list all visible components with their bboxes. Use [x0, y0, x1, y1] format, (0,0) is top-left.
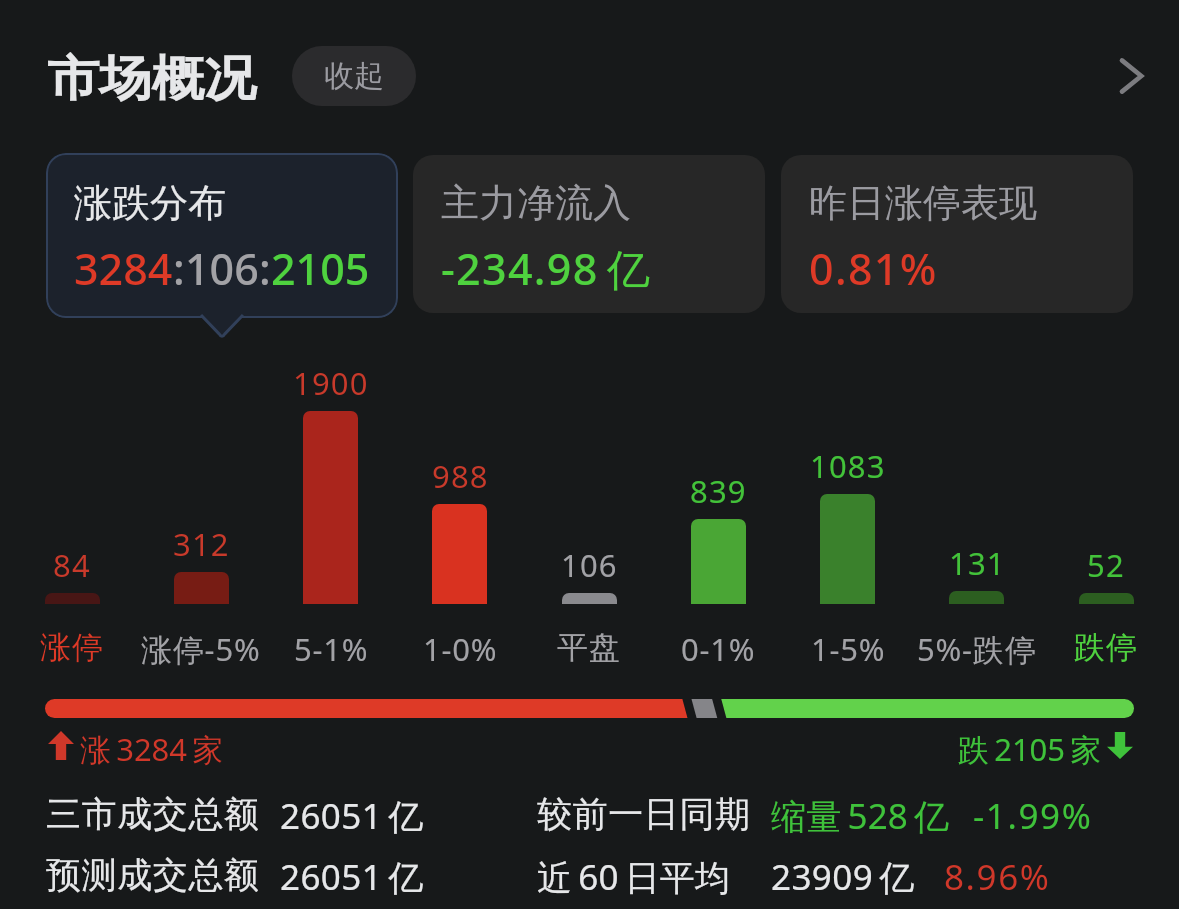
staticText: 1-0%: [423, 628, 498, 670]
button[interactable]: 主力净流入: [413, 155, 765, 313]
staticText: :: [173, 239, 185, 298]
staticText: 106: [561, 544, 618, 586]
staticText: 23909 亿: [771, 853, 915, 901]
staticText: 市场概况: [47, 49, 256, 109]
button[interactable]: [913, 352, 1041, 670]
staticText: -1.99%: [973, 792, 1093, 840]
staticText: 106: [185, 239, 259, 298]
staticText: 2105: [271, 239, 370, 298]
staticText: 84: [53, 544, 91, 586]
staticText: 近 60 日平均: [537, 853, 731, 901]
staticText: 跌 2105 家: [958, 728, 1102, 770]
button[interactable]: 昨日涨停表现: [781, 155, 1133, 313]
staticText: 较前一日同期: [537, 792, 751, 836]
button[interactable]: [525, 352, 653, 670]
staticText: 预测成交总额: [46, 853, 260, 897]
staticText: 涨跌分布: [74, 179, 226, 227]
staticText: 839: [690, 470, 747, 512]
staticText: 涨 3284 家: [80, 728, 224, 770]
button[interactable]: 涨跌分布: [46, 153, 398, 318]
button[interactable]: [137, 352, 265, 670]
button[interactable]: [784, 352, 912, 670]
staticText: 8.96%: [944, 853, 1051, 901]
staticText: 131: [949, 542, 1006, 584]
button[interactable]: [396, 352, 524, 670]
button[interactable]: [1042, 352, 1170, 670]
button[interactable]: [8, 352, 136, 670]
staticText: 0-1%: [681, 628, 756, 670]
button[interactable]: [267, 352, 395, 670]
staticText: 988: [432, 455, 489, 497]
staticText: 312: [173, 523, 230, 565]
staticText: 昨日涨停表现: [809, 179, 1037, 227]
staticText: 1083: [810, 445, 886, 487]
staticText: 三市成交总额: [46, 792, 260, 836]
staticText: 涨停-5%: [141, 628, 261, 670]
button[interactable]: 收起: [292, 46, 416, 106]
staticText: :: [259, 239, 271, 298]
staticText: 1900: [293, 362, 369, 404]
staticText: 0.81%: [809, 239, 938, 298]
staticText: 52: [1087, 544, 1125, 586]
staticText: 收起: [324, 57, 384, 95]
button[interactable]: 展开更多: [1085, 31, 1175, 121]
staticText: 5%-跌停: [917, 628, 1037, 670]
staticText: 跌停: [1074, 628, 1138, 667]
staticText: 主力净流入: [441, 179, 631, 227]
staticText: -234.98 亿: [441, 239, 652, 298]
staticText: 26051 亿: [280, 853, 424, 901]
staticText: 缩量 528 亿: [771, 792, 950, 840]
staticText: 涨停: [40, 628, 104, 667]
staticText: 1-5%: [811, 628, 886, 670]
staticText: 3284: [74, 239, 173, 298]
staticText: 5-1%: [294, 628, 369, 670]
button[interactable]: [654, 352, 782, 670]
staticText: 平盘: [557, 628, 621, 667]
staticText: 26051 亿: [280, 792, 424, 840]
